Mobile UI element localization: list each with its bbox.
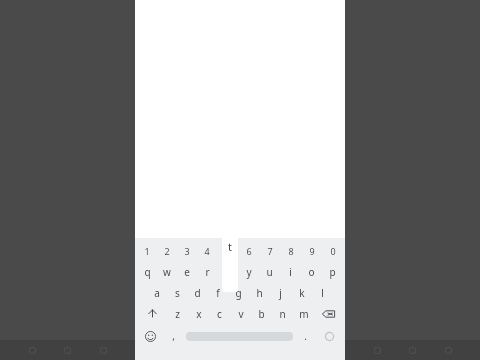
staticText: s	[175, 286, 180, 300]
staticText: r	[205, 265, 210, 279]
button[interactable]: i	[280, 261, 301, 282]
staticText: k	[299, 286, 305, 300]
staticText: 2	[164, 245, 170, 257]
button[interactable]: p	[322, 261, 343, 282]
staticText: b	[258, 307, 265, 321]
button[interactable]: c	[209, 303, 230, 324]
button[interactable]: z	[167, 303, 188, 324]
staticText: j	[279, 286, 282, 300]
staticText: .	[304, 329, 307, 343]
button[interactable]: q	[137, 261, 157, 282]
button[interactable]: j	[270, 282, 291, 303]
staticText: t	[228, 239, 232, 254]
staticText: z	[175, 307, 180, 321]
button[interactable]: ,	[163, 324, 184, 348]
staticText: 1	[144, 245, 150, 257]
button[interactable]: e	[177, 261, 197, 282]
button[interactable]: Enter	[316, 324, 342, 348]
staticText: q	[144, 265, 151, 279]
staticText: n	[279, 307, 286, 321]
staticText: 8	[288, 245, 294, 257]
button[interactable]: a	[147, 282, 167, 303]
staticText: e	[184, 265, 190, 279]
button[interactable]: m	[293, 303, 314, 324]
staticText: h	[256, 286, 263, 300]
button[interactable]: w	[157, 261, 177, 282]
staticText: 6	[246, 245, 252, 257]
button[interactable]: k	[291, 282, 312, 303]
button[interactable]: 1	[137, 241, 157, 261]
staticText: g	[235, 286, 242, 300]
staticText: x	[196, 307, 202, 321]
button[interactable]: 8	[280, 241, 301, 261]
button[interactable]: Emoji	[138, 324, 163, 348]
button[interactable]: t	[217, 261, 238, 282]
button[interactable]: g	[228, 282, 249, 303]
staticText: f	[216, 286, 220, 300]
button[interactable]: 6	[238, 241, 259, 261]
button[interactable]: o	[301, 261, 322, 282]
staticText: 7	[267, 245, 273, 257]
staticText: a	[154, 286, 160, 300]
button[interactable]: f	[207, 282, 228, 303]
staticText: 3	[184, 245, 190, 257]
button[interactable]: l	[312, 282, 333, 303]
button[interactable]: x	[188, 303, 209, 324]
button[interactable]: h	[249, 282, 270, 303]
staticText: w	[163, 265, 171, 279]
button[interactable]: s	[167, 282, 187, 303]
staticText: u	[266, 265, 273, 279]
button[interactable]: r	[197, 261, 217, 282]
button[interactable]: .	[295, 324, 316, 348]
staticText: 4	[204, 245, 210, 257]
button[interactable]: 2	[157, 241, 177, 261]
button[interactable]: Backspace	[314, 303, 343, 324]
button[interactable]: u	[259, 261, 280, 282]
staticText: y	[246, 265, 252, 279]
button[interactable]: Shift	[137, 303, 167, 324]
button[interactable]: 9	[301, 241, 322, 261]
staticText: p	[329, 265, 336, 279]
staticText: v	[238, 307, 244, 321]
staticText: 5	[225, 245, 231, 257]
button[interactable]: v	[230, 303, 251, 324]
staticText: c	[217, 307, 222, 321]
staticText: d	[194, 286, 201, 300]
button[interactable]: 4	[197, 241, 217, 261]
button[interactable]: y	[238, 261, 259, 282]
staticText: 0	[330, 245, 336, 257]
button[interactable]: 0	[322, 241, 343, 261]
button[interactable]: t	[222, 236, 238, 292]
button[interactable]: 5	[217, 241, 238, 261]
button[interactable]: b	[251, 303, 272, 324]
button[interactable]: d	[187, 282, 207, 303]
staticText: ,	[172, 329, 175, 343]
button[interactable]: 3	[177, 241, 197, 261]
button[interactable]: n	[272, 303, 293, 324]
staticText: 9	[309, 245, 315, 257]
staticText: i	[289, 265, 292, 279]
staticText: m	[299, 307, 309, 321]
staticText: o	[308, 265, 315, 279]
staticText: l	[321, 286, 324, 300]
button[interactable]: 7	[259, 241, 280, 261]
